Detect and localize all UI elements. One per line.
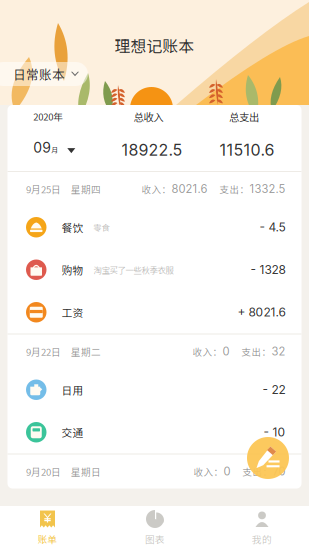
staticText: 支出： [219,182,249,196]
button[interactable]: 2020年 [33,109,75,156]
staticText: 收入： [141,182,171,196]
staticText: 购物 [61,262,83,277]
staticText: 32 [271,345,285,358]
button[interactable]: 账单 [0,506,95,550]
staticText: 星期日 [71,464,101,478]
staticText: 9月25日 [26,182,61,196]
button[interactable]: Add record [247,437,289,479]
staticText: 18922.5 [121,140,182,160]
staticText: 零食 [93,221,109,233]
button[interactable]: 餐饮 [7,206,301,248]
staticText: 支出： [241,344,271,358]
staticText: 收入： [193,464,223,478]
staticText: 9月22日 [26,344,61,358]
staticText: 星期四 [71,182,101,196]
button[interactable]: 日常账本 [0,62,88,86]
staticText: 0 [223,465,230,478]
staticText: 账单 [37,532,57,546]
staticText: 月 [51,145,58,155]
staticText: 总收入 [133,109,163,124]
staticText: 9月20日 [26,464,61,478]
button[interactable]: 图表 [95,506,215,550]
staticText: - 10 [263,425,285,439]
staticText: 0 [222,345,229,358]
staticText: 工资 [61,304,83,320]
button[interactable]: 购物 [7,248,301,291]
staticText: 日用 [61,382,83,397]
staticText: + 8021.6 [237,305,285,319]
staticText: 日常账本 [13,65,65,83]
staticText: 淘宝买了一些秋季衣服 [93,264,173,276]
staticText: 2020年 [33,109,62,123]
staticText: 09 [33,139,51,156]
button[interactable]: 工资 [7,291,301,333]
staticText: 餐饮 [61,219,83,235]
staticText: - 4.5 [259,220,285,234]
staticText: - 1328 [250,262,285,277]
staticText: 理想记账本 [114,34,194,57]
staticText: 收入： [192,344,222,358]
staticText: 支出： [242,464,272,478]
staticText: 1332.5 [249,182,285,196]
staticText: 8021.6 [171,182,207,196]
button[interactable]: 交通 [7,411,301,453]
staticText: 图表 [145,532,165,546]
staticText: 70 [272,465,285,478]
staticText: 星期二 [71,344,101,358]
staticText: 总支出 [229,109,259,124]
staticText: 交通 [61,424,83,440]
button[interactable]: 日用 [7,368,301,411]
staticText: - 22 [262,382,285,397]
staticText: 我的 [252,532,272,546]
button[interactable]: 我的 [215,506,309,550]
staticText: 11510.6 [219,140,274,160]
